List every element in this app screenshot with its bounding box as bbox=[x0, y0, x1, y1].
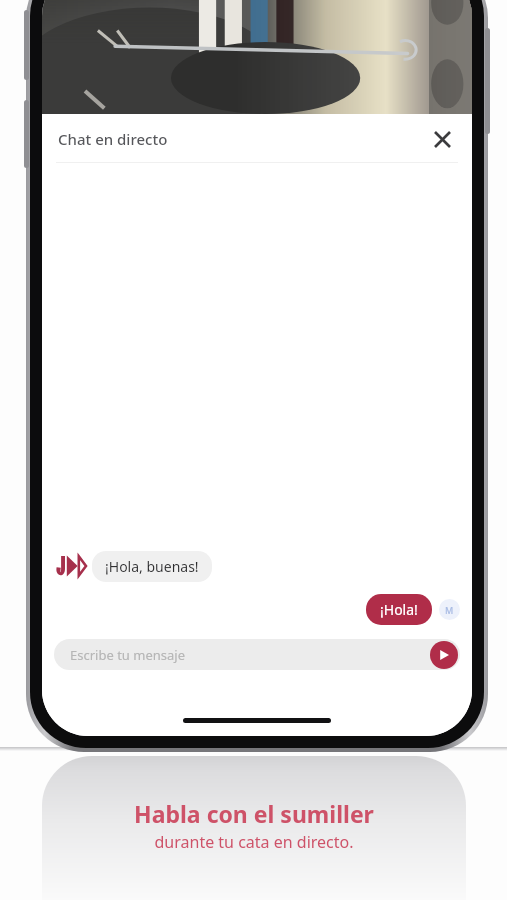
staticText: Escribe tu mensaje bbox=[70, 646, 185, 664]
button[interactable]: Escribe tu mensaje bbox=[54, 639, 460, 670]
staticText: ¡Hola, buenas! bbox=[105, 557, 199, 576]
button[interactable]: Enviar mensaje bbox=[430, 641, 458, 669]
staticText: ¡Hola! bbox=[380, 600, 418, 619]
staticText: Habla con el sumiller bbox=[134, 798, 374, 829]
staticText: durante tu cata en directo. bbox=[154, 831, 354, 853]
button[interactable]: ¡Hola, buenas! bbox=[92, 551, 212, 582]
staticText: Chat en directo bbox=[58, 129, 168, 149]
staticText: M bbox=[445, 604, 454, 616]
button[interactable]: ¡Hola! bbox=[366, 594, 432, 625]
button[interactable]: Cerrar chat bbox=[426, 123, 458, 155]
